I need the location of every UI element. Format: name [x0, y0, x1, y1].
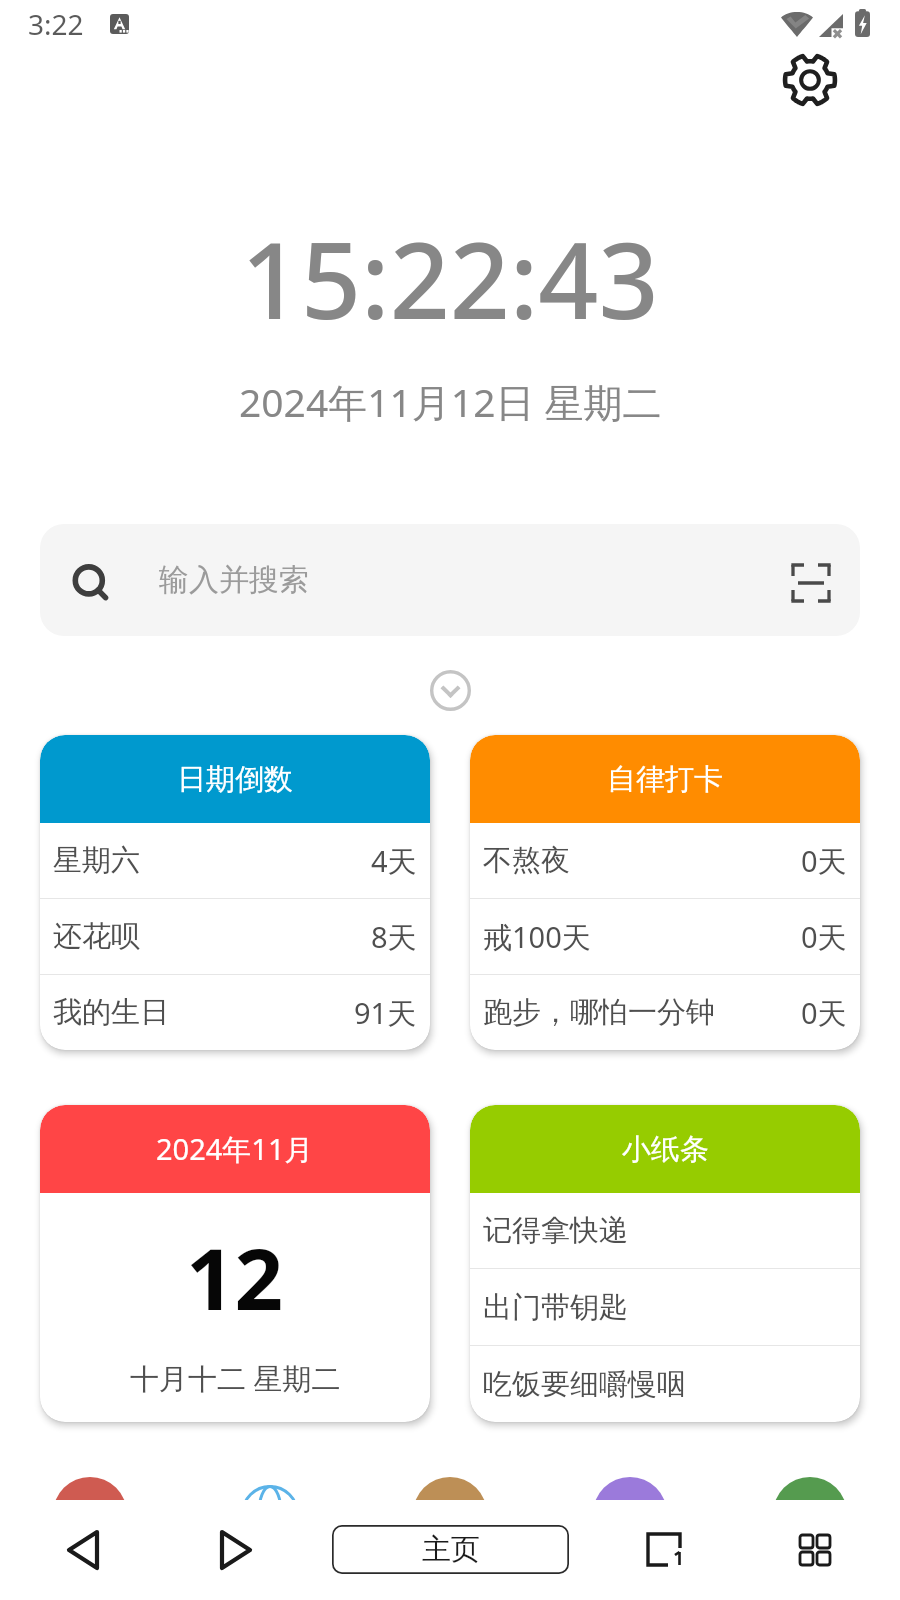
staticText: 跑步，哪怕一分钟 [483, 994, 715, 1031]
staticText: 十月十二 星期二 [130, 1358, 341, 1398]
staticText: 不熬夜 [483, 842, 570, 879]
button[interactable]: 自律打卡 [470, 735, 860, 1050]
staticText: 4天 [371, 841, 417, 881]
button[interactable]: 记得拿快递 [483, 1193, 847, 1268]
button[interactable]: 主页 [332, 1525, 569, 1574]
button[interactable]: App 4 [580, 1465, 680, 1502]
staticText: 输入并搜索 [159, 561, 309, 599]
staticText: 主页 [422, 1531, 480, 1568]
staticText: 2024年11月12日 星期二 [239, 375, 662, 428]
button[interactable]: 戒100天 [483, 899, 847, 974]
button[interactable]: 吃饭要细嚼慢咽 [483, 1346, 847, 1422]
staticText: 91天 [354, 993, 417, 1033]
staticText: 记得拿快递 [483, 1212, 628, 1249]
button[interactable]: App 2 [220, 1465, 320, 1502]
staticText: 星期六 [53, 842, 140, 879]
button[interactable]: 小纸条 [470, 1105, 860, 1422]
button[interactable]: App 1 [40, 1465, 140, 1502]
button[interactable]: Recent apps [624, 1510, 704, 1590]
staticText: 0天 [801, 993, 847, 1033]
button[interactable]: 输入并搜索 [40, 524, 860, 636]
button[interactable]: All apps [775, 1510, 855, 1590]
staticText: 3:22 [28, 5, 84, 43]
button[interactable]: Expand [427, 667, 473, 713]
button[interactable]: Forward [196, 1510, 276, 1590]
button[interactable]: App 5 [760, 1465, 860, 1502]
staticText: 15:22:43 [241, 207, 659, 350]
staticText: 还花呗 [53, 918, 140, 955]
staticText: 0天 [801, 917, 847, 957]
button[interactable]: 星期六 [53, 823, 417, 898]
staticText: 吃饭要细嚼慢咽 [483, 1366, 686, 1403]
staticText: 0天 [801, 841, 847, 881]
staticText: 2024年11月 [156, 1129, 314, 1169]
button[interactable]: 还花呗 [53, 899, 417, 974]
button[interactable]: 不熬夜 [483, 823, 847, 898]
staticText: 戒100天 [483, 917, 591, 957]
staticText: 小纸条 [622, 1131, 709, 1168]
button[interactable]: 出门带钥匙 [483, 1269, 847, 1345]
button[interactable]: 日期倒数 [40, 735, 430, 1050]
staticText: 我的生日 [53, 994, 169, 1031]
staticText: 8天 [371, 917, 417, 957]
button[interactable]: 跑步，哪怕一分钟 [483, 975, 847, 1050]
button[interactable]: Settings [781, 51, 839, 109]
button[interactable]: App 3 [400, 1465, 500, 1502]
staticText: 日期倒数 [177, 761, 293, 798]
staticText: 出门带钥匙 [483, 1289, 628, 1326]
button[interactable]: 我的生日 [53, 975, 417, 1050]
staticText: 自律打卡 [607, 761, 723, 798]
staticText: 12 [186, 1219, 284, 1335]
button[interactable]: Back [43, 1510, 123, 1590]
button[interactable]: 2024年11月 [40, 1105, 430, 1422]
